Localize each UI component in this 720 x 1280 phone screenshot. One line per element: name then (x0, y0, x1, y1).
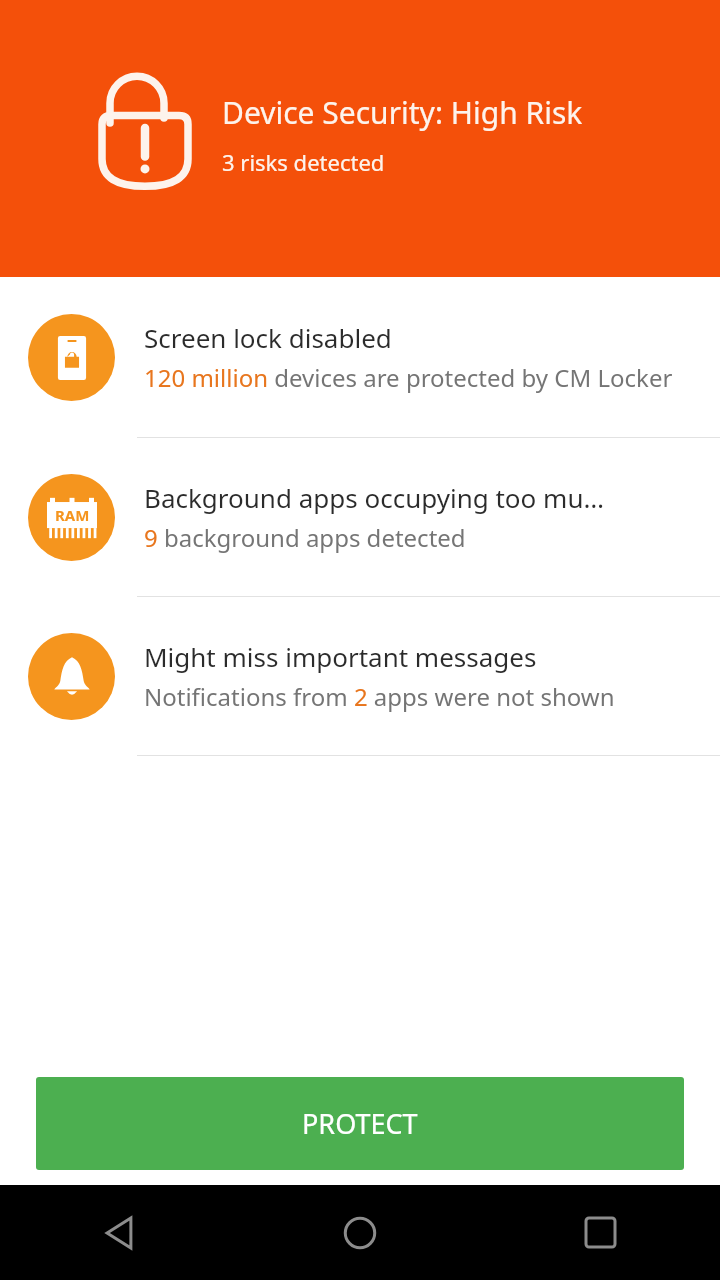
staticText: Screen lock disabled (144, 320, 392, 355)
button[interactable]: Background apps (0, 438, 720, 596)
staticText: RAM (55, 505, 90, 525)
staticText: 9 background apps detected (144, 521, 466, 554)
staticText: Might miss important messages (144, 639, 537, 674)
button[interactable]: PROTECT (36, 1077, 684, 1170)
staticText: Device Security: High Risk (222, 92, 583, 133)
button[interactable]: Back (0, 1185, 240, 1280)
button[interactable]: Home (240, 1185, 480, 1280)
staticText: Background apps occupying too mu… (144, 480, 605, 515)
staticText: Notifications from 2 apps were not shown (144, 680, 615, 713)
staticText: 3 risks detected (222, 147, 385, 177)
button[interactable]: Screen lock disabled (0, 277, 720, 437)
staticText: PROTECT (302, 1105, 418, 1142)
button[interactable]: Recents (480, 1185, 720, 1280)
staticText: 120 million devices are protected by CM … (144, 361, 673, 394)
button[interactable]: Might miss important messages (0, 597, 720, 755)
